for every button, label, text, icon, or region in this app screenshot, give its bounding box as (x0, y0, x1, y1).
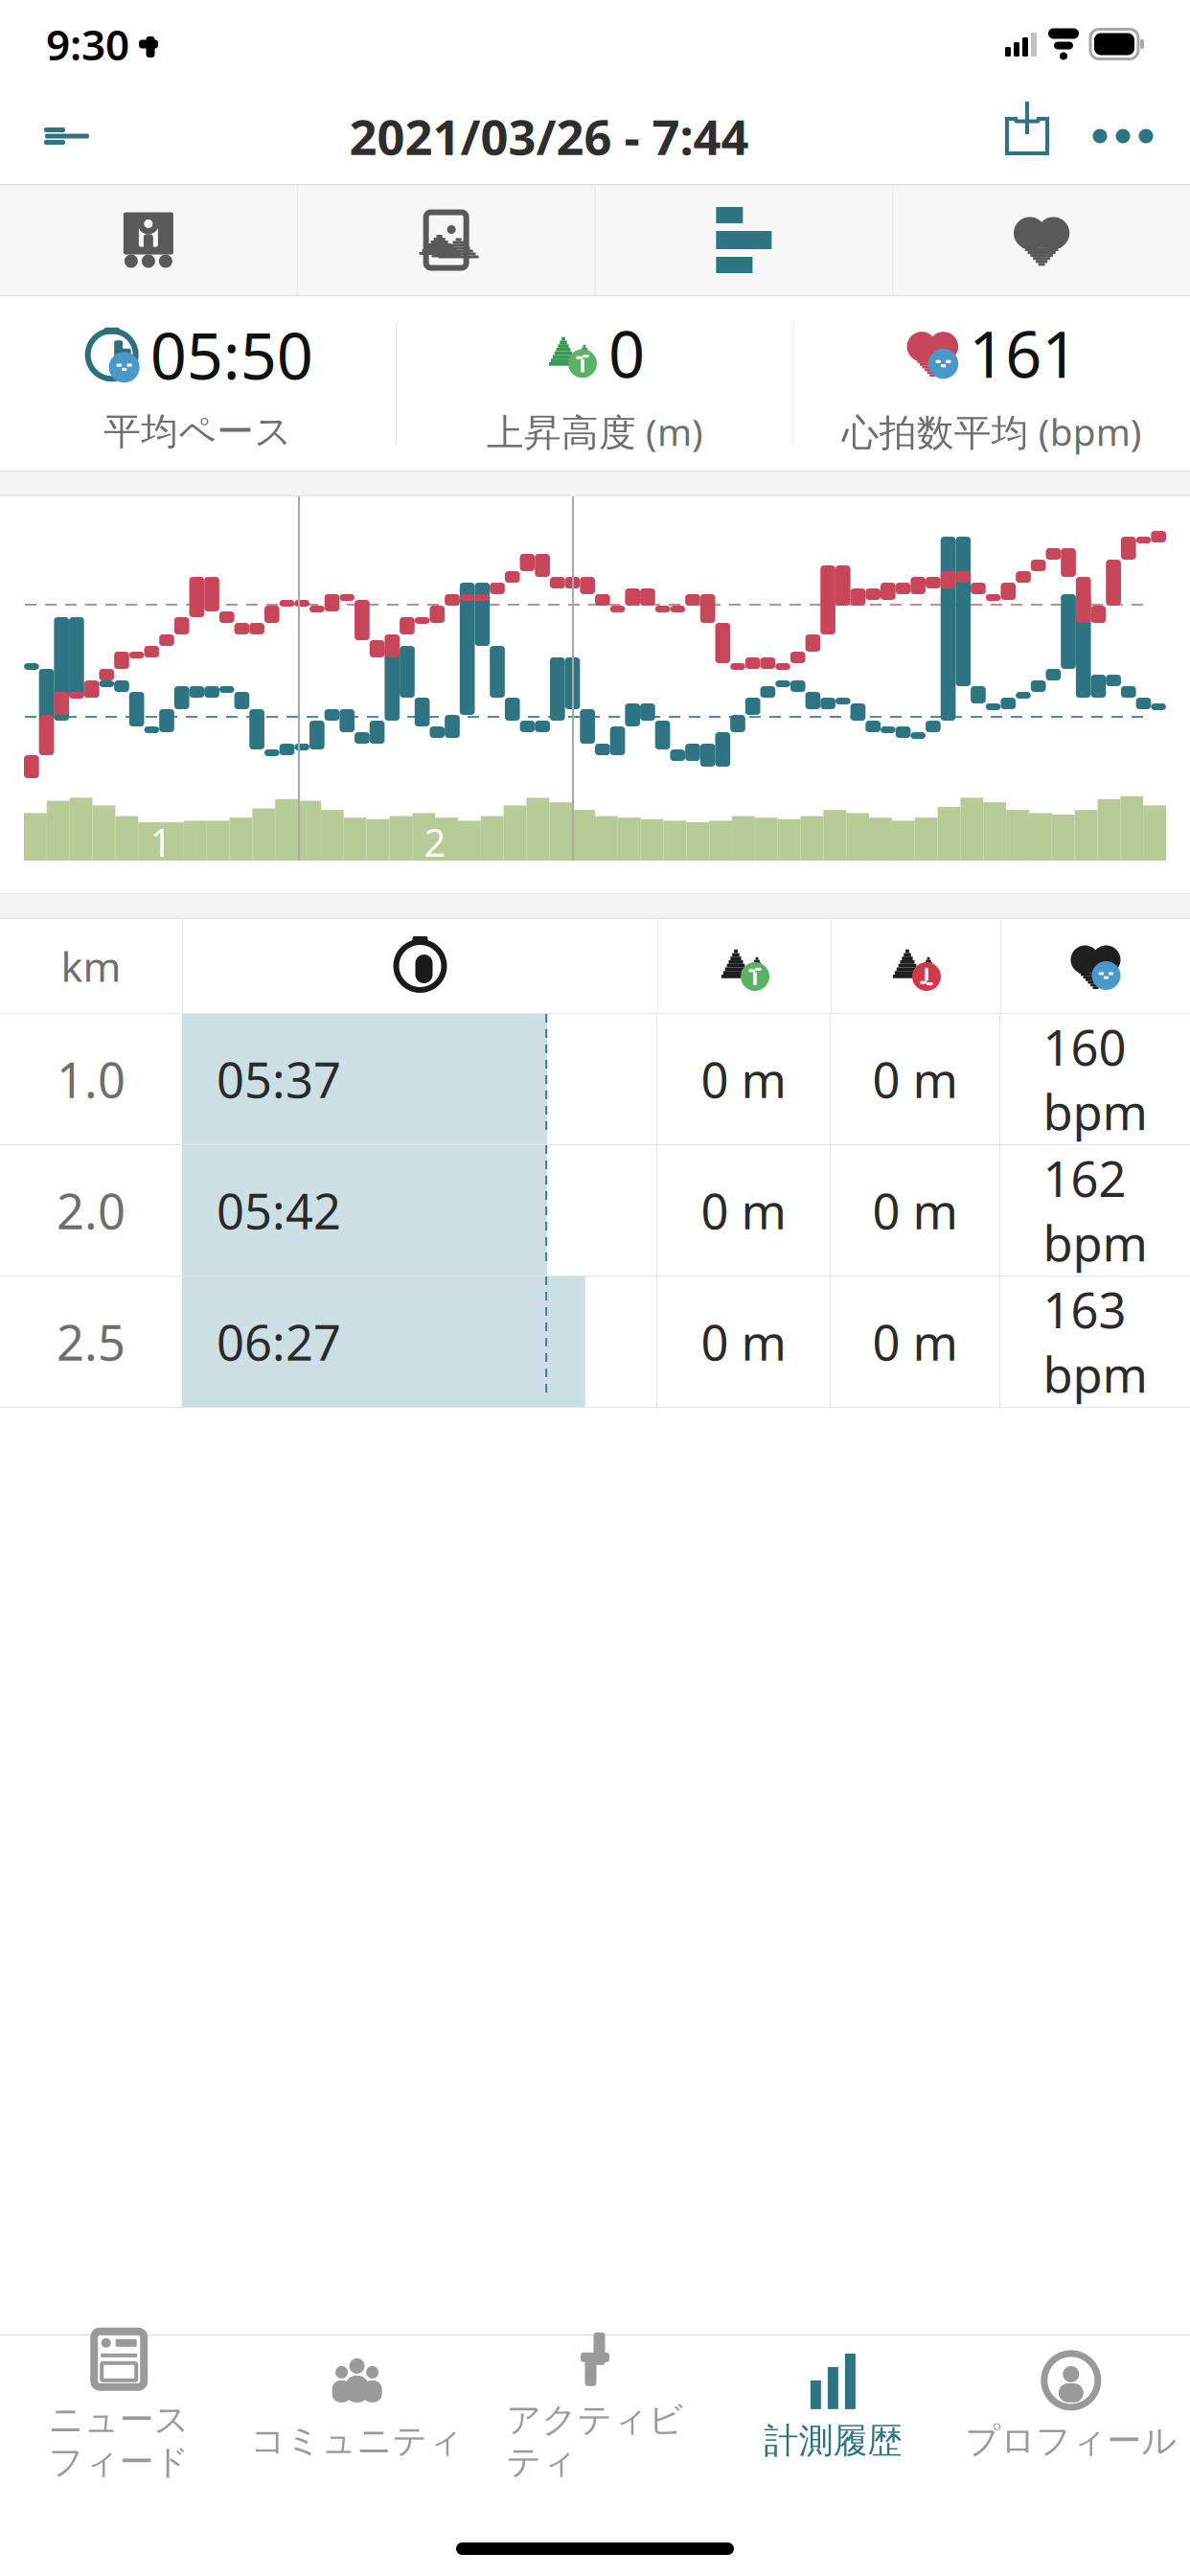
staticText: 計測履歴 (764, 2420, 902, 2462)
button[interactable]: ニュースフィード (0, 2335, 238, 2477)
button[interactable]: Charts (595, 185, 892, 295)
staticText: 05:50 (150, 312, 313, 397)
staticText: 心拍数平均 (bpm) (842, 407, 1142, 456)
staticText: 0 m (872, 1178, 958, 1243)
staticText: ニュースフィード (49, 2399, 189, 2483)
staticText: 0 m (701, 1178, 786, 1243)
staticText: 05:42 (217, 1178, 341, 1243)
staticText: 0 m (701, 1309, 786, 1374)
staticText: 0 m (701, 1047, 786, 1111)
staticText: 0 m (872, 1047, 958, 1111)
staticText: 05:37 (217, 1047, 341, 1111)
button[interactable]: プロフィール (952, 2335, 1190, 2477)
staticText: 163 bpm (1043, 1277, 1147, 1406)
staticText: 2.0 (57, 1178, 126, 1243)
staticText: 162 bpm (1043, 1146, 1147, 1275)
staticText: アクティビティ (506, 2399, 684, 2483)
staticText: 平均ペース (104, 409, 292, 454)
staticText: 2021/03/26 - 7:44 (349, 104, 749, 168)
button[interactable]: 計測履歴 (714, 2335, 952, 2477)
button[interactable]: 2.0 (0, 1145, 1190, 1276)
staticText: 06:27 (217, 1309, 341, 1374)
staticText: プロフィール (965, 2420, 1177, 2462)
button[interactable]: 2.5 (0, 1276, 1190, 1407)
staticText: 2 (424, 816, 446, 867)
button[interactable]: Heart rate (893, 185, 1190, 295)
button[interactable]: アクティビティ (476, 2335, 714, 2477)
button[interactable]: コミュニティ (238, 2335, 476, 2477)
button[interactable]: 1.0 (0, 1014, 1190, 1144)
button[interactable]: More options (1073, 90, 1173, 182)
staticText: 1 (150, 816, 172, 867)
staticText: km (61, 939, 121, 993)
button[interactable]: Share (981, 90, 1073, 182)
staticText: コミュニティ (251, 2420, 463, 2462)
staticText: 2.5 (57, 1309, 126, 1374)
staticText: 160 bpm (1043, 1015, 1147, 1144)
button[interactable]: Back (17, 90, 117, 182)
staticText: 上昇高度 (m) (487, 407, 703, 456)
staticText: 0 m (872, 1309, 958, 1374)
button[interactable]: Map (0, 185, 297, 295)
staticText: 161 (969, 311, 1078, 395)
button[interactable]: Photos (298, 185, 595, 295)
staticText: 9:30 (46, 16, 129, 72)
staticText: 1.0 (57, 1047, 126, 1111)
staticText: 0 (608, 311, 645, 395)
